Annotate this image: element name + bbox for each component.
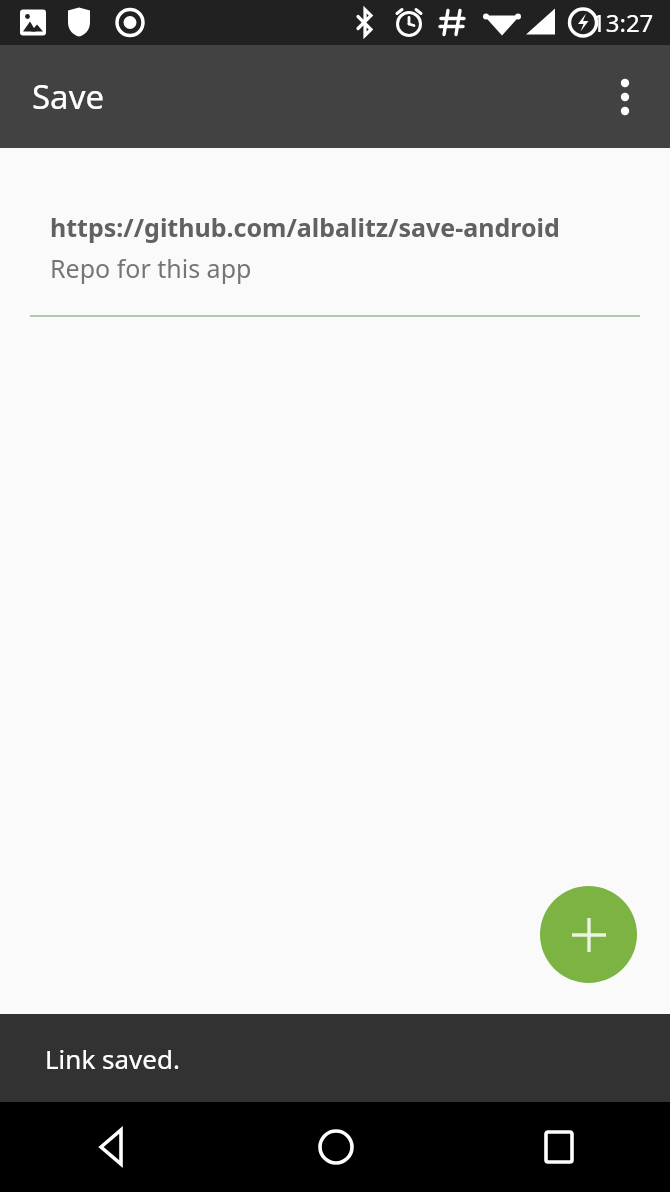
button[interactable]: More options (593, 65, 657, 129)
button[interactable]: Recent apps (447, 1102, 670, 1192)
button[interactable]: Link saved. (0, 1014, 670, 1102)
button[interactable]: Back (0, 1102, 224, 1192)
staticText: Save (32, 74, 105, 119)
staticText: Repo for this app (50, 251, 252, 285)
button[interactable]: Home (224, 1102, 447, 1192)
staticText: 13:27 (592, 6, 654, 39)
staticText: https://github.com/albalitz/save-android (50, 210, 560, 244)
staticText: Link saved. (45, 1041, 180, 1076)
button[interactable]: Add link (540, 886, 637, 983)
button[interactable]: https://github.com/albalitz/save-android (0, 210, 670, 315)
